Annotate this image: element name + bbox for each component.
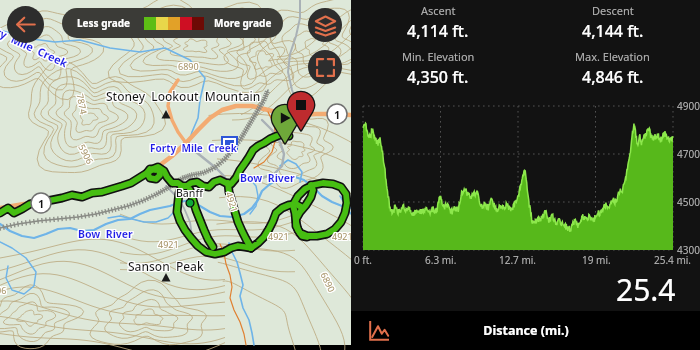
staticText: Forty Mile Creek (0, 18, 71, 72)
staticText: Stoney Lookout Mountain (105, 87, 260, 103)
staticText: Forty Mile Creek (149, 142, 236, 156)
staticText: Stoney Lookout Mountain (107, 88, 262, 104)
staticText: 1 (38, 196, 45, 211)
staticText: Forty Mile Creek (0, 17, 71, 71)
staticText: 4921 (223, 190, 241, 214)
staticText: Sanson Peak (128, 258, 204, 274)
staticText: 6.3 mi. (425, 253, 457, 267)
staticText: 7874 (73, 93, 90, 116)
staticText: 4921 (333, 231, 354, 243)
staticText: 06 (0, 284, 6, 296)
staticText: 5906 (75, 141, 95, 166)
staticText: Forty Mile Creek (0, 16, 70, 70)
staticText: 5906 (77, 143, 97, 167)
button[interactable]: Map layers (308, 8, 342, 42)
staticText: Bow River (240, 172, 295, 186)
staticText: 4921 (268, 230, 289, 242)
staticText: 4921 (159, 239, 180, 251)
staticText: 25.4 mi. (654, 253, 692, 267)
staticText: Bow River (79, 228, 134, 242)
staticText: 7874 (75, 93, 91, 116)
staticText: 7874 (75, 91, 91, 114)
staticText: Sanson Peak (128, 259, 204, 275)
staticText: Banff (177, 187, 204, 201)
staticText: 4921 (223, 191, 241, 215)
staticText: Descent (592, 3, 634, 18)
staticText: 4921 (224, 189, 242, 213)
staticText: Sanson Peak (128, 257, 204, 273)
staticText: 6890 (179, 59, 200, 71)
staticText: 06 (0, 284, 7, 296)
staticText: Sanson Peak (127, 257, 203, 273)
staticText: Forty Mile Creek (0, 17, 70, 71)
staticText: 19 mi. (582, 253, 611, 267)
staticText: 4700 (677, 147, 700, 161)
staticText: 4921 (157, 239, 178, 251)
staticText: 4921 (269, 229, 290, 241)
staticText: Bow River (77, 226, 132, 240)
staticText: 4,350 ft. (407, 66, 469, 88)
button[interactable]: Back (7, 6, 44, 43)
staticText: Bow River (241, 171, 296, 185)
staticText: 7874 (75, 92, 91, 115)
staticText: Forty Mile Creek (0, 15, 71, 70)
button[interactable]: Full screen (308, 50, 342, 84)
staticText: Bow River (241, 172, 296, 186)
staticText: 4921 (225, 191, 243, 214)
staticText: 5906 (75, 142, 96, 167)
staticText: 6890 (318, 270, 338, 294)
staticText: 6890 (177, 61, 198, 73)
staticText: 4921 (267, 229, 288, 241)
staticText: Banff (175, 187, 202, 201)
staticText: Bow River (78, 226, 133, 240)
staticText: Banff (175, 185, 202, 199)
staticText: Forty Mile Creek (0, 17, 69, 71)
staticText: 7874 (74, 94, 90, 117)
staticText: 4921 (269, 230, 290, 242)
staticText: 4921 (158, 237, 179, 249)
staticText: 5906 (76, 141, 96, 165)
staticText: 4921 (157, 238, 178, 250)
staticText: More grade (214, 16, 272, 30)
staticText: 1 (334, 107, 341, 122)
staticText: 4921 (158, 238, 179, 250)
staticText: 6890 (177, 60, 198, 72)
staticText: Bow River (239, 171, 294, 185)
staticText: Sanson Peak (129, 259, 205, 275)
staticText: Sanson Peak (129, 258, 205, 274)
staticText: 0 ft. (354, 253, 373, 267)
staticText: 06 (0, 284, 8, 296)
button[interactable]: Distance (mi.) (351, 311, 700, 350)
staticText: Forty Mile Creek (150, 140, 237, 154)
staticText: 6890 (178, 59, 199, 71)
staticText: 6890 (177, 59, 198, 71)
button[interactable]: Less grade (62, 8, 283, 38)
staticText: 5906 (77, 141, 98, 166)
staticText: 4900 (677, 99, 700, 113)
staticText: 7874 (73, 92, 89, 115)
staticText: 7874 (74, 91, 90, 114)
staticText: Bow River (78, 228, 133, 242)
staticText: 4921 (267, 231, 288, 243)
staticText: Sanson Peak (129, 257, 205, 273)
staticText: 4921 (157, 237, 178, 249)
staticText: 7874 (74, 92, 90, 115)
staticText: Less grade (77, 16, 131, 30)
staticText: Stoney Lookout Mountain (106, 89, 261, 105)
staticText: Stoney Lookout Mountain (105, 88, 260, 104)
staticText: 6890 (317, 269, 337, 294)
staticText: 4921 (224, 190, 242, 214)
staticText: 7874 (76, 93, 92, 116)
staticText: 5906 (77, 141, 97, 165)
staticText: Stoney Lookout Mountain (107, 89, 262, 105)
staticText: 5906 (78, 142, 98, 166)
staticText: Banff (176, 186, 203, 200)
staticText: Forty Mile Creek (150, 141, 237, 155)
staticText: Forty Mile Creek (151, 141, 238, 155)
staticText: Ascent (421, 3, 456, 18)
staticText: 4921 (331, 229, 352, 241)
staticText: 4921 (268, 231, 289, 243)
staticText: 06 (0, 283, 6, 295)
staticText: Forty Mile Creek (0, 15, 70, 69)
staticText: Max. Elevation (575, 49, 650, 64)
